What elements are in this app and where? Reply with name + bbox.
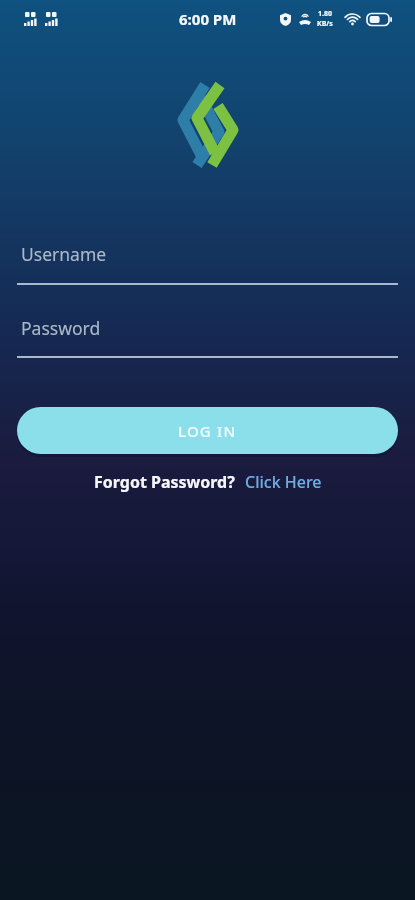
staticText: 1.80 <box>318 9 332 19</box>
staticText: Forgot Password? <box>94 471 235 493</box>
button[interactable]: Password <box>0 316 415 358</box>
staticText: LOG IN <box>178 421 237 441</box>
staticText: Username <box>21 242 107 266</box>
staticText: KB/s <box>317 19 333 29</box>
button[interactable]: Username <box>0 242 415 285</box>
staticText: 6:00 PM <box>179 9 237 29</box>
staticText: Password <box>21 316 101 340</box>
button[interactable]: LOG IN <box>17 407 398 454</box>
button[interactable]: Click Here <box>245 471 322 493</box>
